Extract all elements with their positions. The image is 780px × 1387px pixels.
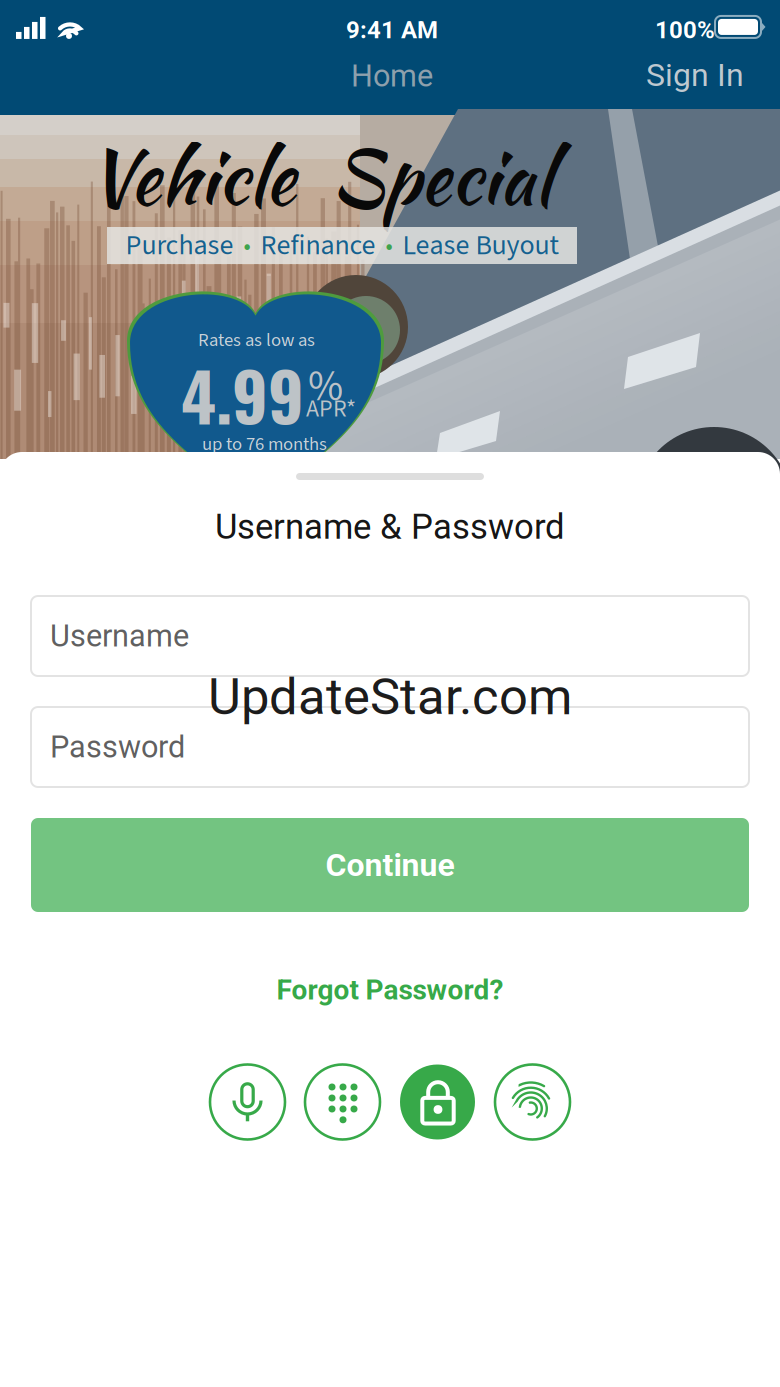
button[interactable]: Forgot Password? [240, 966, 540, 1014]
staticText: • [375, 228, 402, 263]
staticText: Home [351, 58, 433, 94]
staticText: Vehicle Special [88, 123, 552, 231]
staticText: APR* [306, 392, 356, 426]
staticText: Refinance [260, 226, 375, 265]
staticText: Lease Buyout [402, 226, 558, 265]
staticText: Rates as low as [198, 327, 315, 354]
staticText: Username & Password [215, 507, 565, 547]
staticText: • [233, 228, 260, 263]
button[interactable]: Password sign in [400, 1064, 475, 1139]
staticText: Forgot Password? [276, 974, 503, 1006]
button[interactable]: Username [31, 596, 749, 676]
staticText: 9:41 AM [346, 16, 438, 44]
button[interactable]: Touch ID sign in [495, 1064, 570, 1139]
staticText: UpdateStar.com [208, 667, 572, 727]
button[interactable]: Password [31, 707, 749, 787]
staticText: Username [50, 618, 189, 654]
button[interactable]: Continue [31, 818, 749, 912]
staticText: Password [50, 729, 185, 765]
staticText: 100% [655, 16, 715, 44]
button[interactable]: Passcode sign in [305, 1064, 380, 1139]
staticText: 4.99 [181, 345, 304, 444]
button[interactable]: Home [337, 56, 447, 96]
button[interactable]: Sign In [640, 55, 750, 95]
staticText: Purchase [125, 226, 233, 265]
staticText: Sign In [646, 56, 744, 94]
staticText: % [308, 356, 343, 417]
staticText: up to 76 months [202, 431, 327, 458]
staticText: Continue [325, 846, 454, 884]
button[interactable]: Voice sign in [210, 1064, 285, 1139]
